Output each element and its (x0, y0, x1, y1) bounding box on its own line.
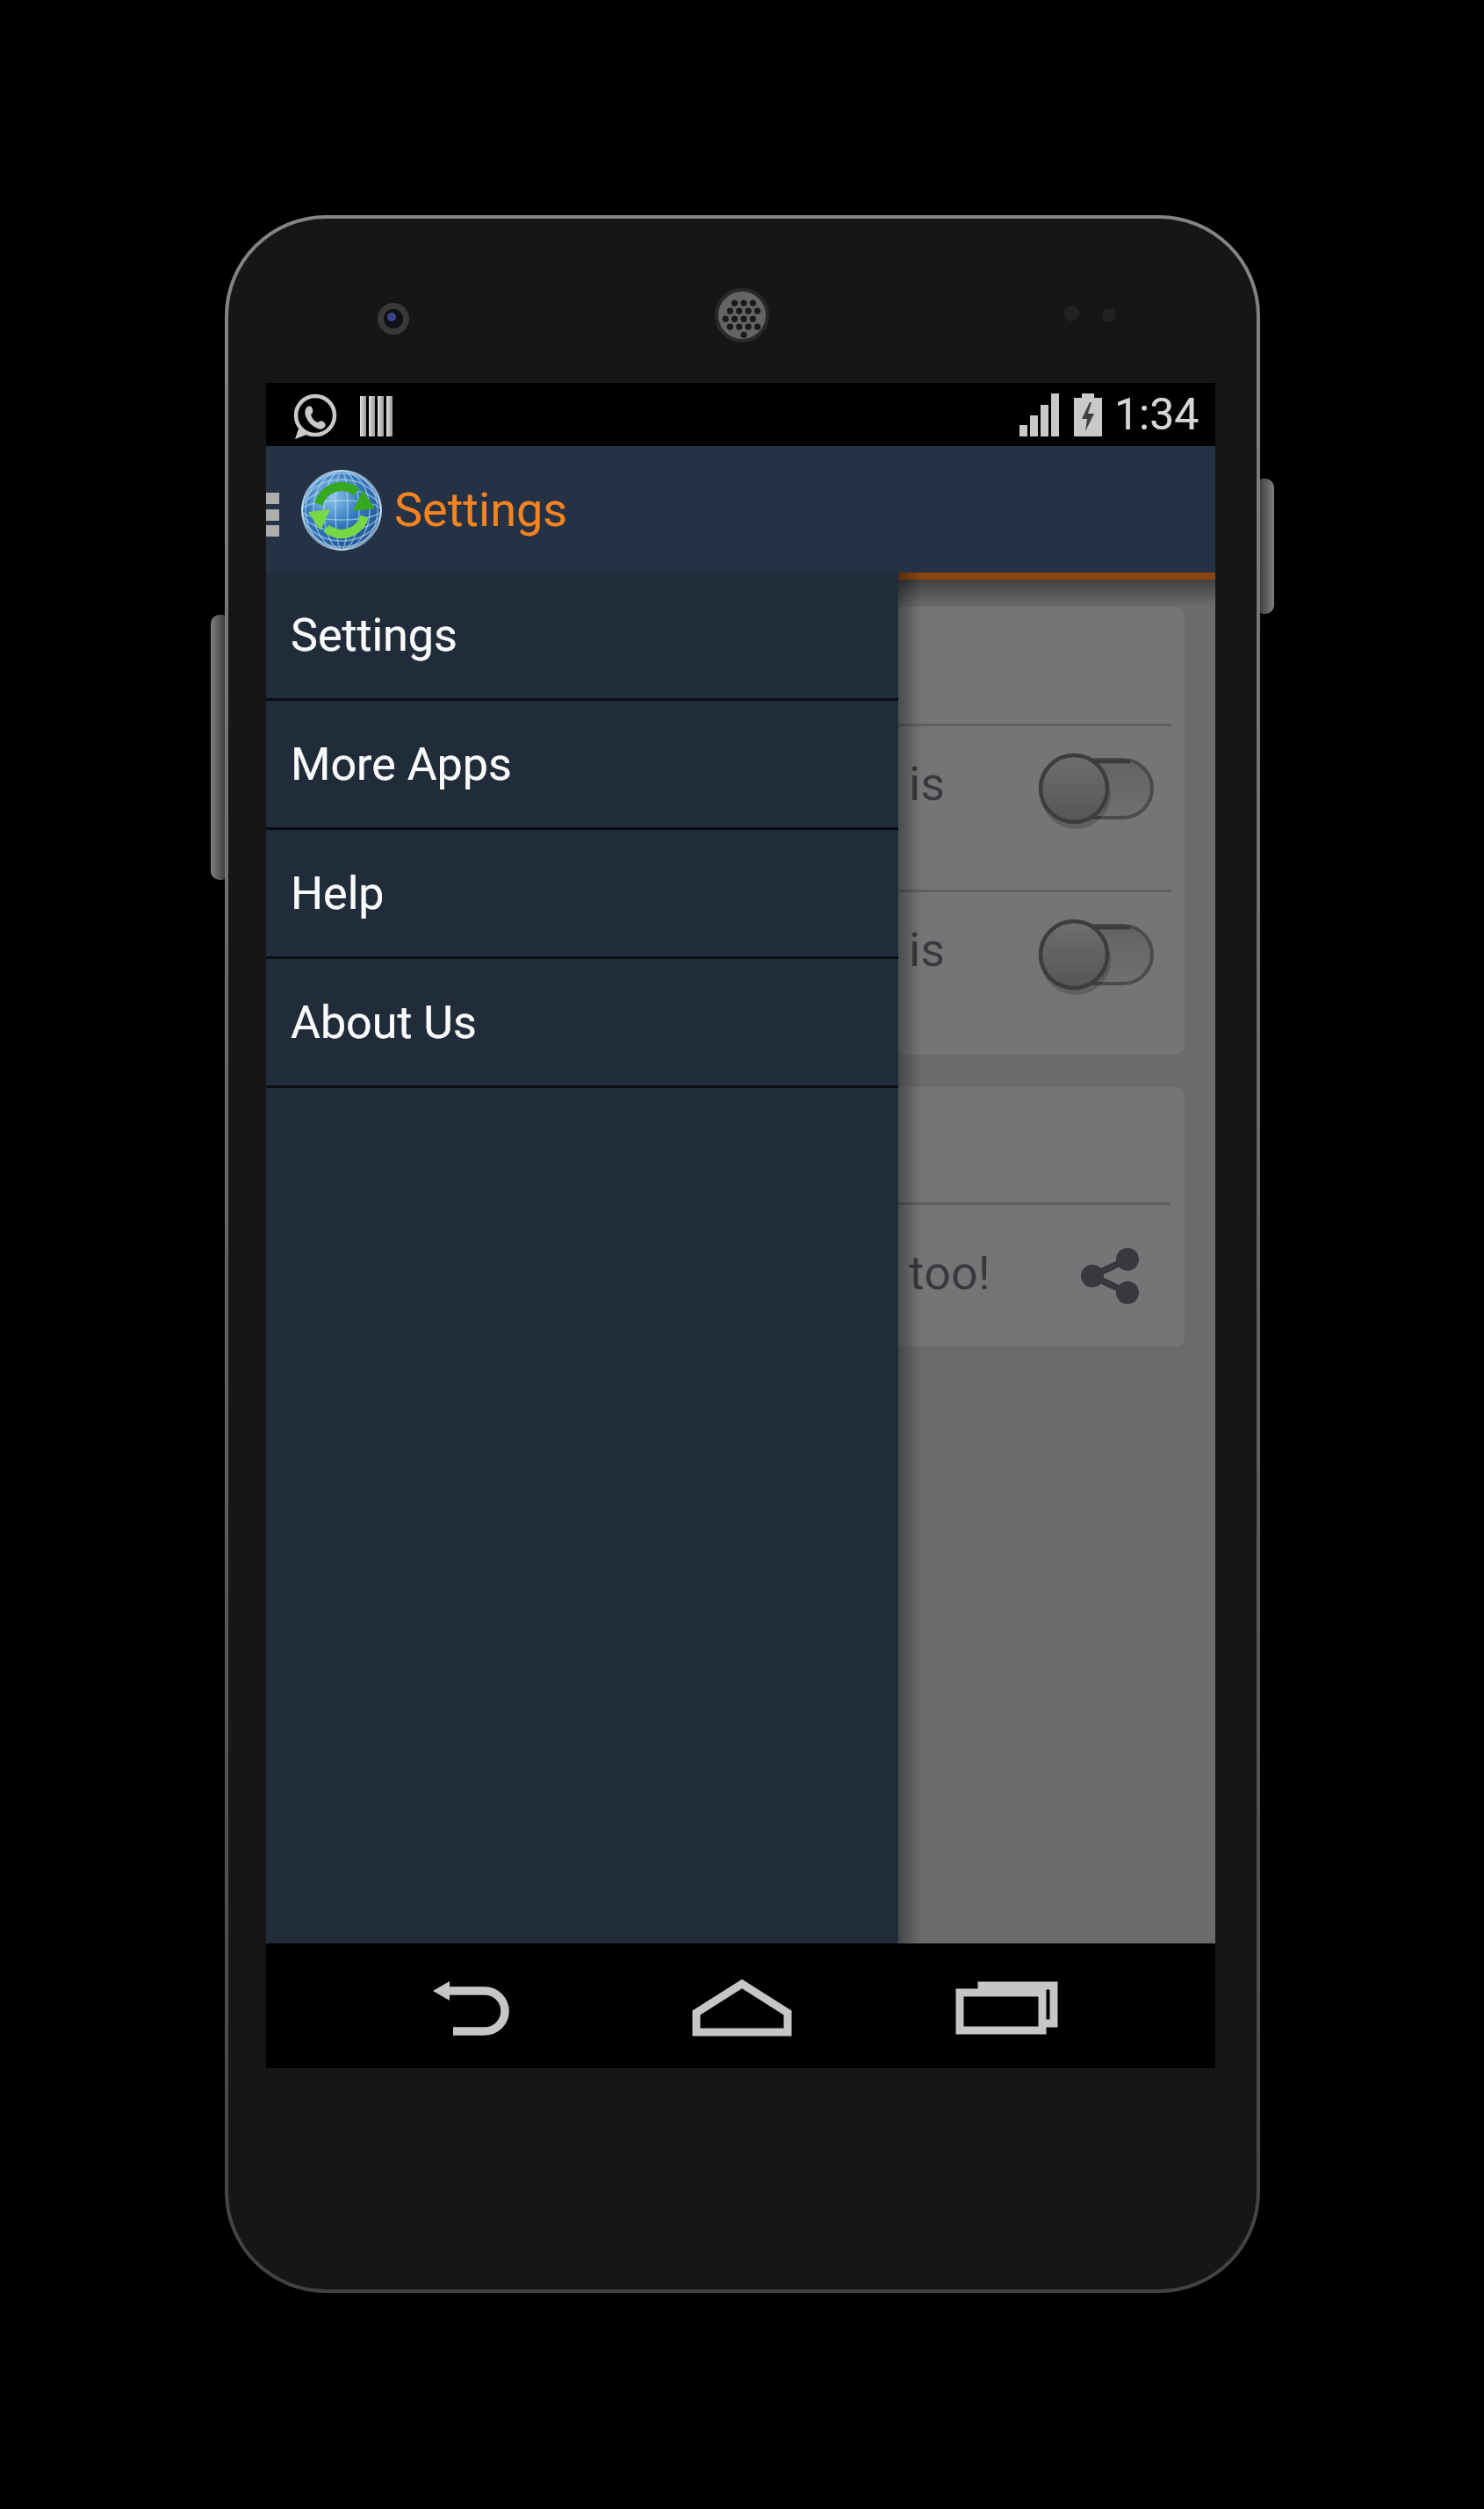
staticText: is (909, 922, 946, 977)
button[interactable] (1032, 914, 1163, 1002)
staticText: About Us (291, 996, 477, 1049)
staticText: More Apps (291, 738, 512, 791)
button[interactable]: Help (266, 830, 898, 959)
button[interactable]: About Us (266, 959, 898, 1088)
button[interactable] (689, 1979, 795, 2037)
button[interactable]: Settings (266, 573, 898, 701)
button[interactable]: More Apps (266, 701, 898, 830)
staticText: Settings (291, 609, 457, 662)
button[interactable] (1074, 1240, 1144, 1312)
staticText: 1:34 (1114, 389, 1199, 441)
button[interactable] (955, 1980, 1059, 2035)
staticText: Help (291, 867, 385, 920)
staticText: too! (909, 1245, 991, 1301)
staticText: Settings (394, 482, 568, 537)
staticText: is (909, 756, 946, 811)
button[interactable] (429, 1980, 530, 2038)
button[interactable] (300, 469, 383, 552)
button[interactable] (1032, 748, 1163, 836)
